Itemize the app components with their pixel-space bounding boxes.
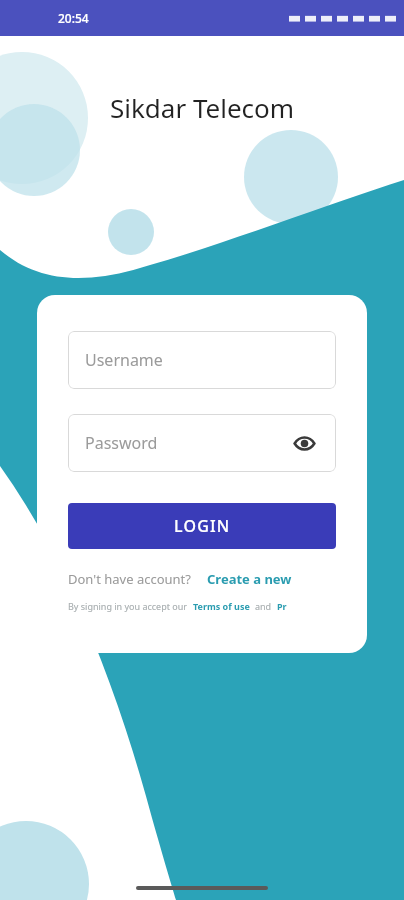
button[interactable]: Create a new (207, 570, 292, 588)
button[interactable]: Username (68, 331, 336, 389)
staticText: Username (85, 349, 163, 371)
staticText: Pr (277, 600, 287, 612)
button[interactable]: Show password (289, 428, 319, 458)
staticText: LOGIN (174, 515, 231, 537)
staticText: By signing in you accept our (68, 600, 188, 612)
button[interactable]: LOGIN (68, 503, 336, 549)
staticText: Sikdar Telecom (110, 90, 295, 125)
button[interactable]: Terms of use (193, 600, 250, 612)
button[interactable]: Pr (277, 600, 287, 612)
staticText: 20:54 (58, 10, 89, 26)
staticText: Create a new (207, 570, 292, 588)
staticText: Password (85, 432, 158, 454)
staticText: Terms of use (193, 600, 250, 612)
button[interactable]: Password (68, 414, 336, 472)
staticText: and (255, 600, 272, 612)
staticText: Don't have account? (68, 570, 191, 588)
